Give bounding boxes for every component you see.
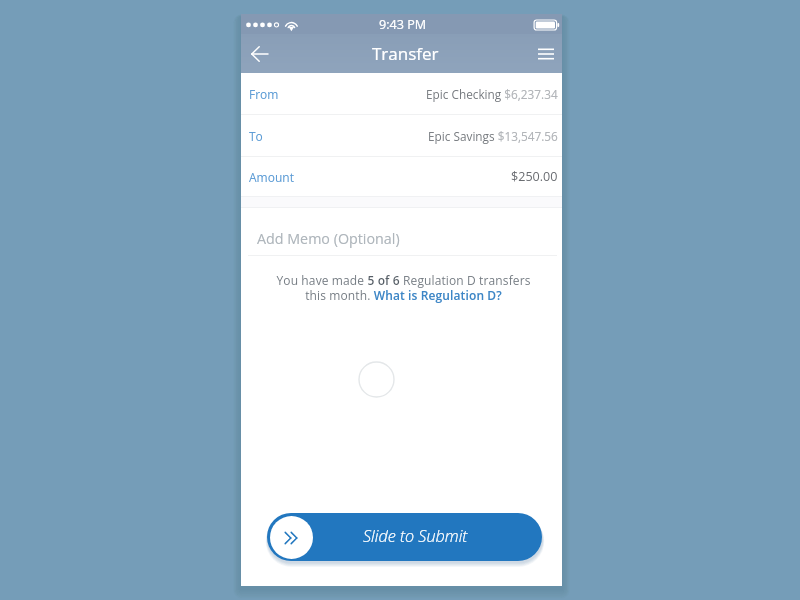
button[interactable]: Amount [241, 157, 562, 196]
staticText: Epic Checking $6,237.34 [426, 86, 558, 102]
button[interactable]: Menu [530, 34, 562, 73]
staticText: $250.00 [511, 168, 558, 185]
staticText: To [249, 128, 263, 144]
staticText: Add Memo (Optional) [257, 229, 400, 248]
staticText: Transfer [372, 42, 439, 65]
button[interactable]: From [241, 73, 562, 115]
staticText: From [249, 86, 279, 102]
staticText: 9:43 PM [379, 16, 427, 33]
button[interactable]: Slide to Submit [267, 513, 542, 561]
button[interactable]: To [241, 115, 562, 157]
button[interactable]: Back [241, 34, 275, 73]
button[interactable]: Add Memo (Optional) [241, 208, 562, 256]
staticText: Amount [249, 169, 294, 185]
staticText: Slide to Submit [363, 525, 468, 547]
staticText: Epic Savings $13,547.56 [428, 128, 558, 144]
staticText: You have made 5 of 6 Regulation D transf… [269, 272, 538, 303]
